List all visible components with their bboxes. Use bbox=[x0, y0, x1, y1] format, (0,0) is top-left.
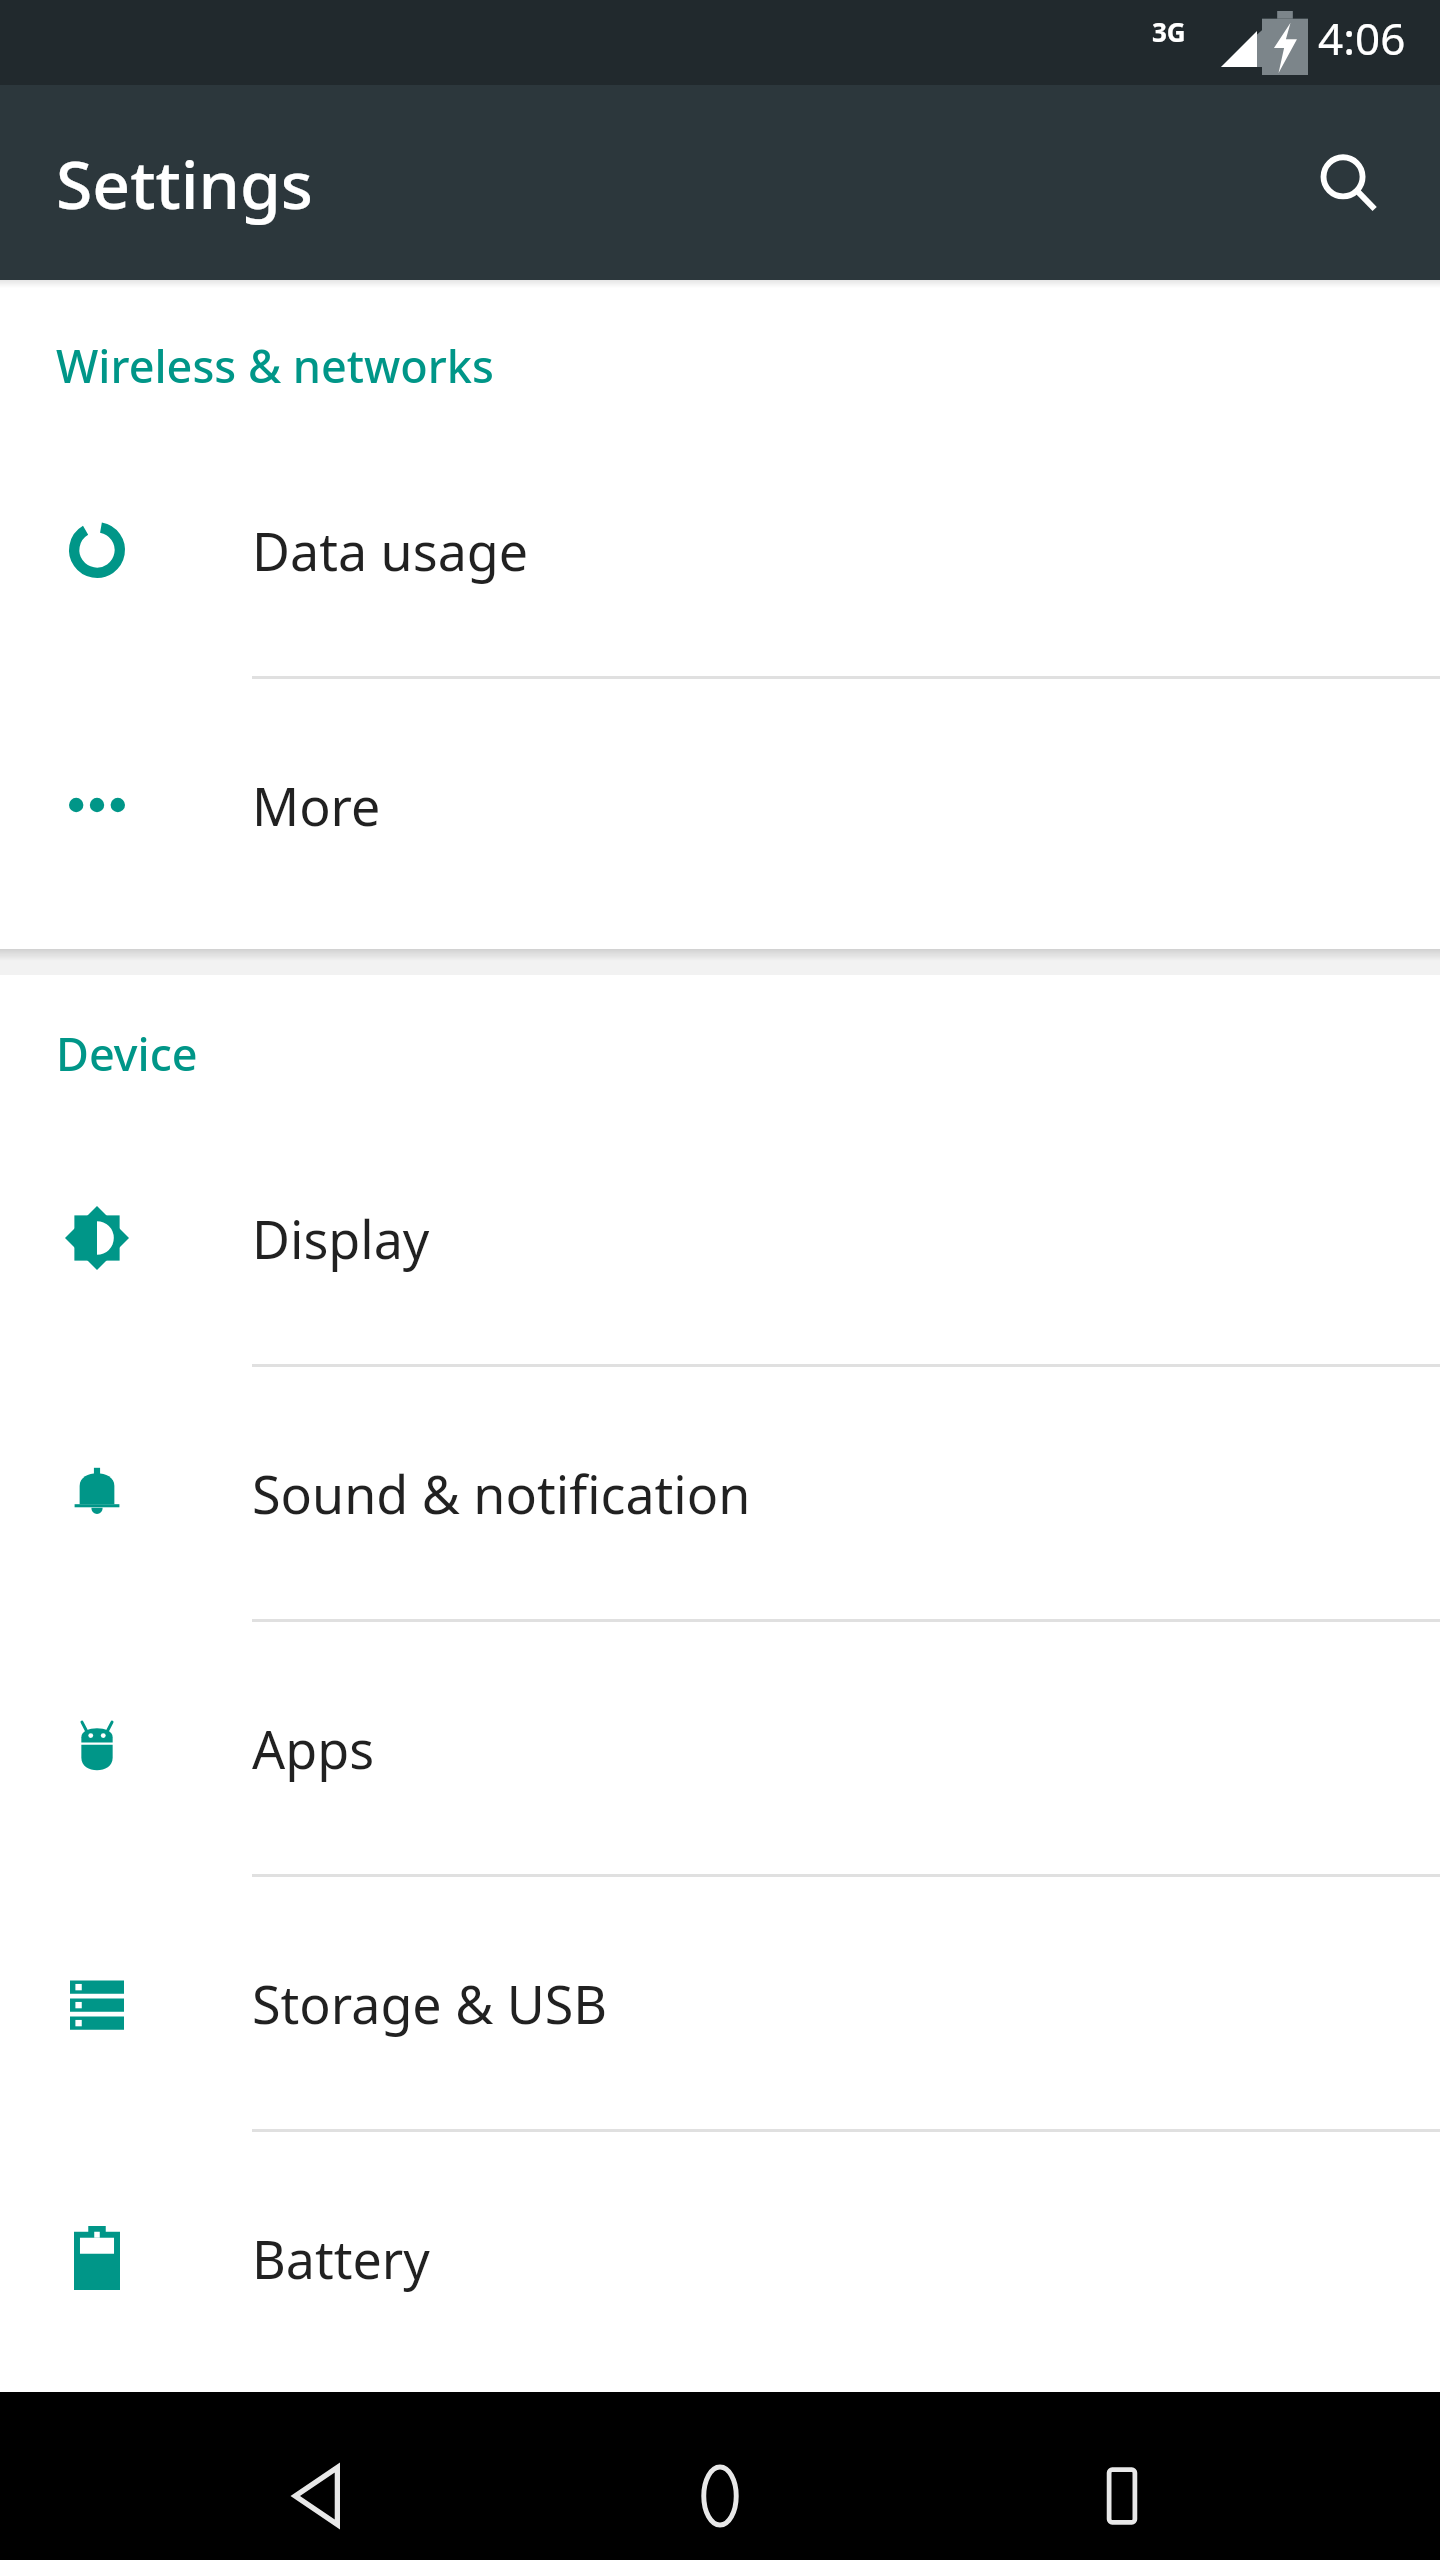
button[interactable]: Back bbox=[262, 2438, 378, 2554]
staticText: Sound & notification bbox=[252, 1458, 751, 1529]
staticText: 4:06 bbox=[1318, 8, 1406, 68]
button[interactable]: Storage & USB bbox=[0, 1877, 1440, 2129]
button[interactable]: Home bbox=[662, 2438, 778, 2554]
staticText: 3G bbox=[1152, 14, 1186, 49]
staticText: Settings bbox=[56, 138, 313, 228]
staticText: Display bbox=[252, 1203, 430, 1274]
button[interactable]: Search bbox=[1288, 123, 1408, 243]
staticText: More bbox=[252, 770, 381, 841]
staticText: Device bbox=[56, 1023, 198, 1084]
staticText: Wireless & networks bbox=[56, 335, 494, 396]
button[interactable]: Display bbox=[0, 1112, 1440, 1364]
staticText: Data usage bbox=[252, 515, 529, 586]
staticText: Battery bbox=[252, 2223, 430, 2294]
button[interactable]: More bbox=[0, 679, 1440, 931]
staticText: Storage & USB bbox=[252, 1968, 608, 2039]
button[interactable]: Sound & notification bbox=[0, 1367, 1440, 1619]
button[interactable]: Recent apps bbox=[1064, 2438, 1180, 2554]
staticText: Apps bbox=[252, 1713, 375, 1784]
button[interactable]: Apps bbox=[0, 1622, 1440, 1874]
button[interactable]: Battery bbox=[0, 2132, 1440, 2384]
button[interactable]: Data usage bbox=[0, 424, 1440, 676]
